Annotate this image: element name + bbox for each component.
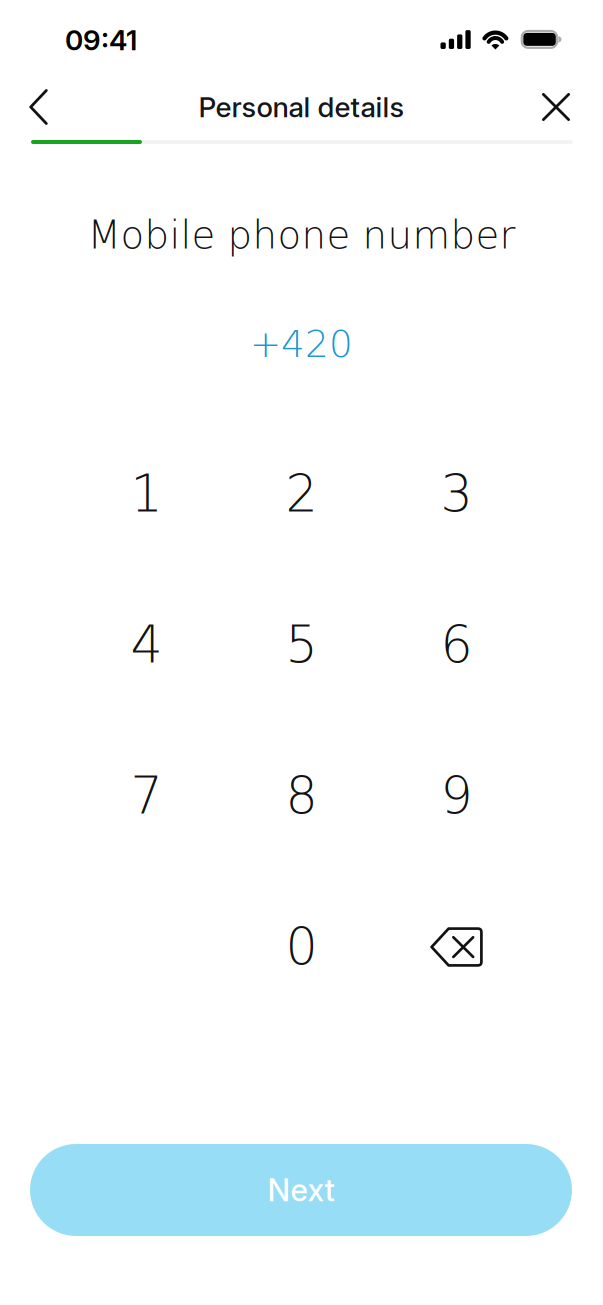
staticText: Mobile phone number — [87, 212, 515, 257]
staticText: 2 — [285, 464, 317, 523]
button[interactable]: 6 — [379, 585, 534, 705]
staticText: 1 — [130, 464, 162, 523]
staticText: 09:41 — [65, 23, 137, 57]
button[interactable]: 9 — [379, 736, 534, 856]
staticText: 5 — [285, 615, 317, 674]
staticText: +420 — [250, 322, 353, 366]
staticText: 3 — [440, 464, 472, 523]
staticText: Personal details — [198, 90, 404, 124]
staticText: 9 — [440, 766, 472, 825]
staticText: 8 — [285, 766, 317, 825]
button[interactable]: 5 — [224, 585, 379, 705]
button[interactable]: 7 — [69, 736, 224, 856]
button[interactable]: Back — [7, 76, 69, 138]
button[interactable]: Next — [30, 1144, 572, 1236]
button[interactable]: 0 — [224, 887, 379, 1007]
staticText: 0 — [285, 917, 317, 976]
staticText: 4 — [130, 615, 162, 674]
button[interactable]: 1 — [69, 434, 224, 554]
button[interactable]: Close — [525, 76, 587, 138]
button[interactable]: 2 — [224, 434, 379, 554]
button[interactable]: 4 — [69, 585, 224, 705]
button[interactable]: 8 — [224, 736, 379, 856]
button[interactable]: 3 — [379, 434, 534, 554]
staticText: 6 — [440, 615, 472, 674]
staticText: 7 — [130, 766, 162, 825]
staticText: Next — [267, 1171, 334, 1208]
button[interactable]: Delete — [379, 887, 534, 1007]
